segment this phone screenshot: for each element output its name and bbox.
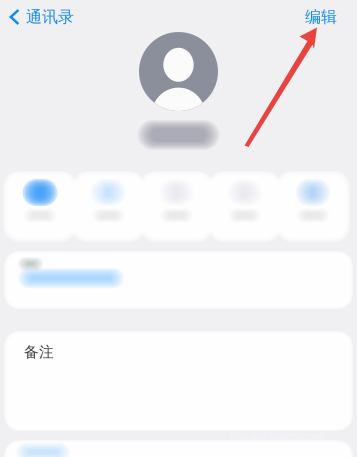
button[interactable]: 编辑: [289, 0, 357, 34]
staticText: jingyan.baidu.com: [229, 429, 324, 443]
button[interactable]: 通讯录: [0, 0, 86, 34]
button[interactable]: 备注: [9, 336, 348, 426]
button[interactable]: 呼叫: [77, 177, 139, 236]
button[interactable]: 信息: [9, 177, 71, 236]
staticText: 通讯录: [26, 7, 74, 27]
staticText: 编辑: [305, 7, 337, 27]
button[interactable]: 视频: [145, 177, 208, 236]
button[interactable]: 邮件: [214, 177, 276, 236]
button[interactable]: 发送信息: [9, 445, 348, 457]
button[interactable]: 手机: [9, 256, 348, 304]
button[interactable]: 付款: [282, 177, 344, 236]
staticText: 备注: [24, 343, 54, 361]
